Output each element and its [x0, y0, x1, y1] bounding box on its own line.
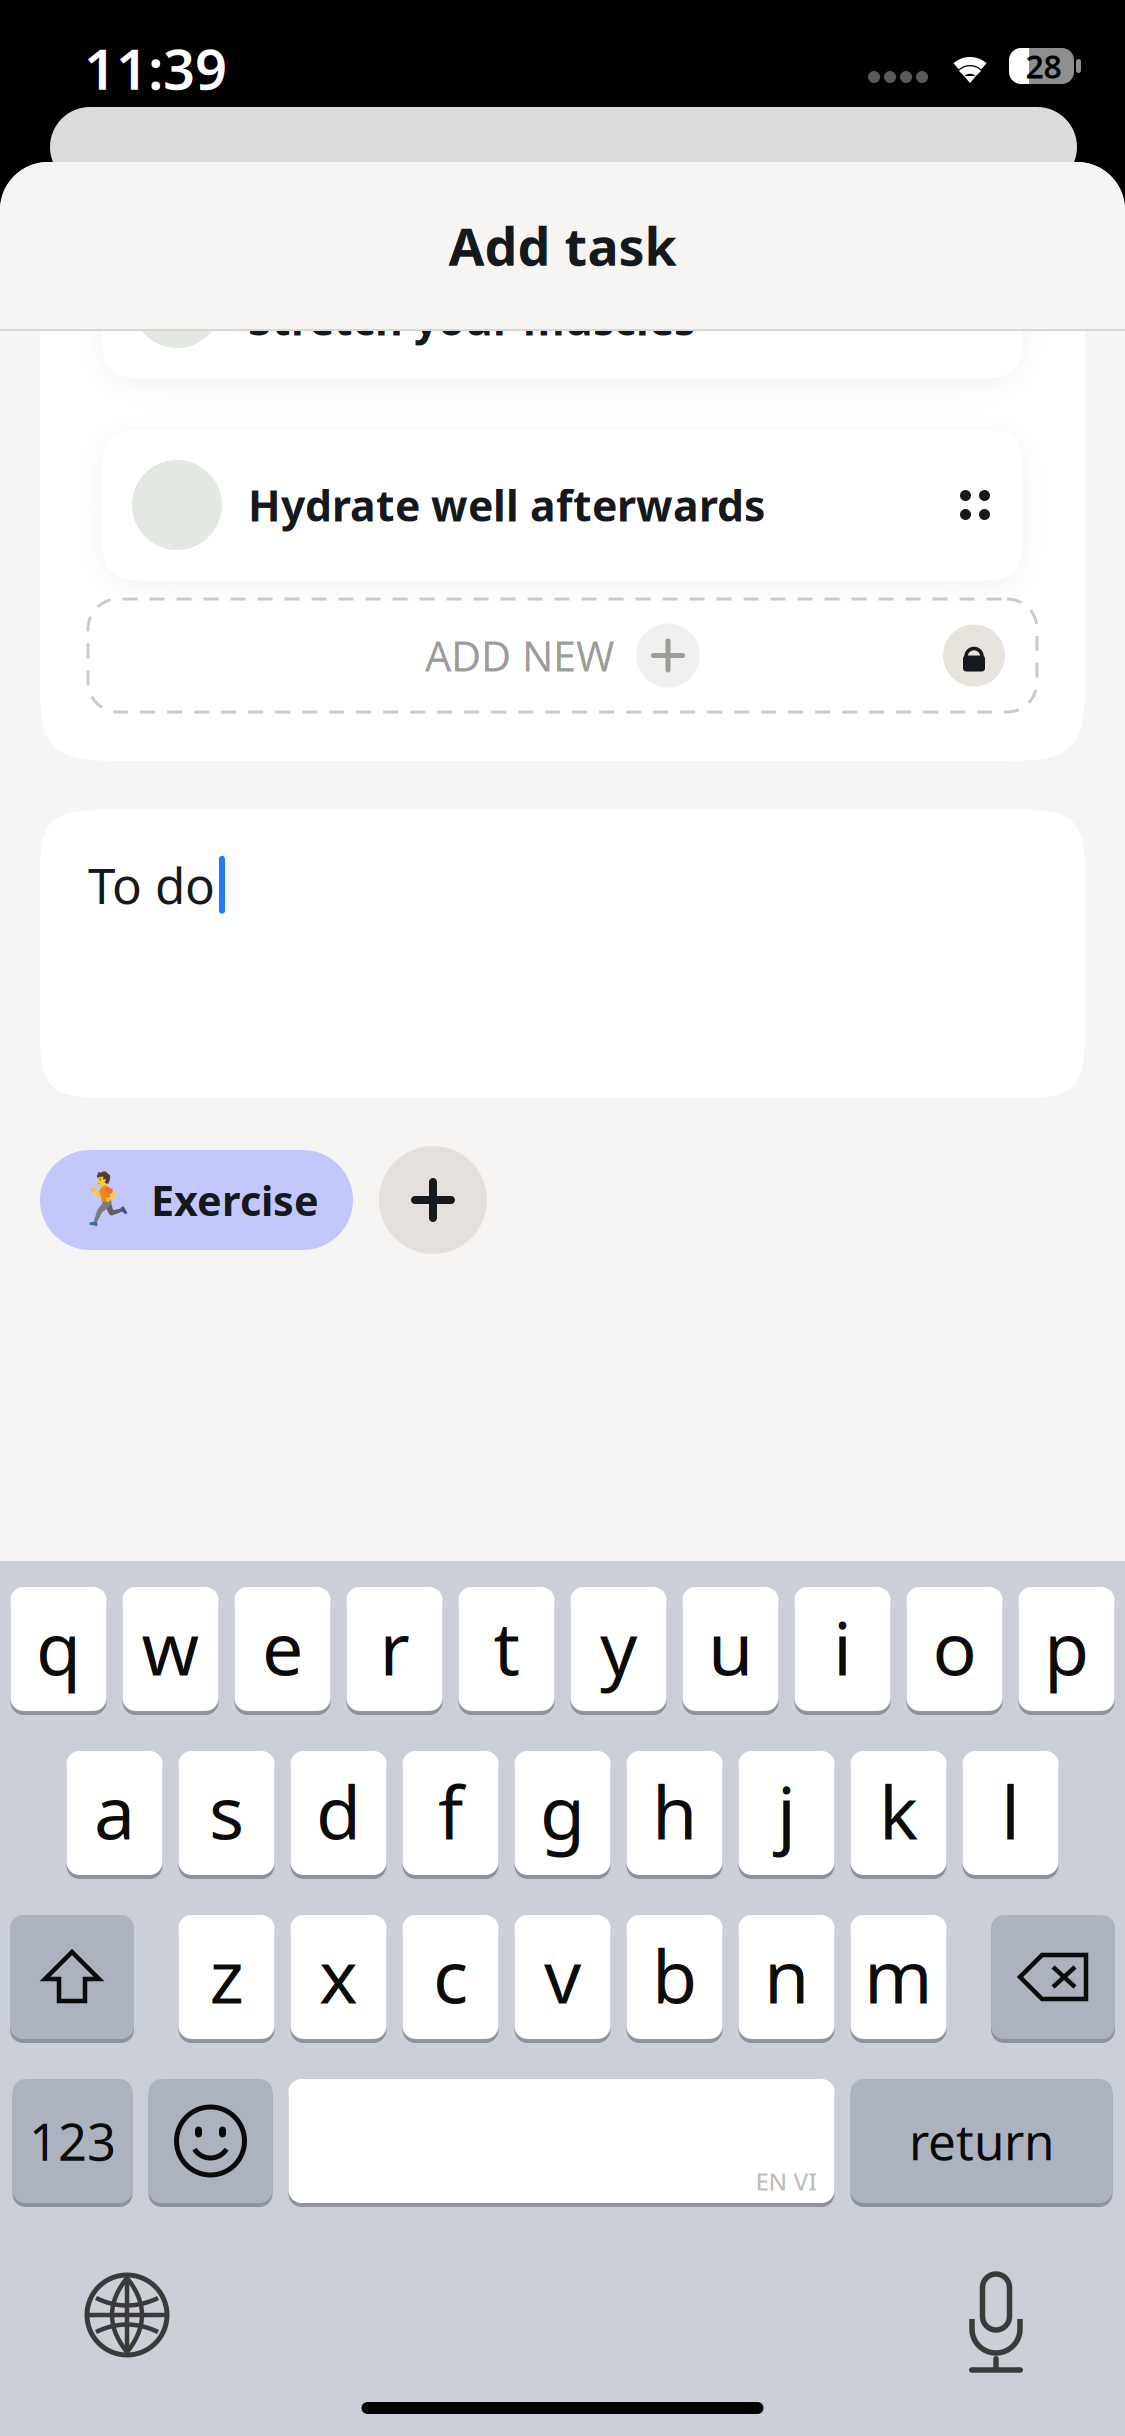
button[interactable]: ADD NEW: [88, 599, 1037, 712]
button[interactable]: r: [346, 1585, 442, 1713]
staticText: q: [36, 1598, 81, 1696]
staticText: d: [316, 1762, 361, 1860]
button[interactable]: 🏃: [40, 1150, 353, 1250]
staticText: h: [652, 1762, 697, 1860]
button[interactable]: i: [794, 1585, 890, 1713]
button[interactable]: b: [626, 1913, 722, 2041]
staticText: j: [777, 1762, 796, 1860]
button[interactable]: f: [402, 1749, 498, 1877]
staticText: f: [438, 1762, 463, 1860]
button[interactable]: u: [682, 1585, 778, 1713]
button[interactable]: p: [1018, 1585, 1114, 1713]
staticText: 123: [29, 2107, 116, 2175]
staticText: c: [433, 1926, 468, 2024]
staticText: ADD NEW: [425, 628, 614, 683]
button[interactable]: Return: [850, 2077, 1112, 2205]
button[interactable]: s: [178, 1749, 274, 1877]
button[interactable]: k: [850, 1749, 946, 1877]
staticText: z: [209, 1926, 243, 2024]
button[interactable]: z: [178, 1913, 274, 2041]
button[interactable]: Lock: [943, 624, 1005, 686]
staticText: 🏃: [74, 1171, 137, 1229]
staticText: Add task: [448, 211, 676, 280]
staticText: Stretch your muscles: [248, 291, 695, 347]
staticText: To do: [88, 852, 215, 917]
button[interactable]: n: [738, 1913, 834, 2041]
staticText: EN VI: [755, 2165, 816, 2197]
button[interactable]: Shift: [10, 1913, 134, 2041]
staticText: t: [493, 1598, 519, 1696]
button[interactable]: Add tag: [379, 1146, 487, 1254]
button[interactable]: a: [66, 1749, 162, 1877]
staticText: v: [544, 1926, 581, 2024]
button[interactable]: v: [514, 1913, 610, 2041]
staticText: p: [1044, 1598, 1089, 1696]
button[interactable]: t: [458, 1585, 554, 1713]
staticText: g: [540, 1762, 585, 1860]
button[interactable]: Delete: [991, 1913, 1115, 2041]
button[interactable]: x: [290, 1913, 386, 2041]
button[interactable]: h: [626, 1749, 722, 1877]
staticText: l: [1001, 1762, 1020, 1860]
button[interactable]: y: [570, 1585, 666, 1713]
staticText: k: [879, 1762, 918, 1860]
staticText: 28: [1025, 45, 1061, 87]
button[interactable]: Numbers: [12, 2077, 132, 2205]
button[interactable]: Space: [288, 2077, 834, 2205]
staticText: 11:39: [84, 31, 227, 105]
staticText: y: [600, 1598, 637, 1696]
staticText: a: [94, 1762, 135, 1860]
button[interactable]: Dictate: [967, 2255, 1025, 2375]
button[interactable]: Next keyboard: [87, 2275, 167, 2355]
button[interactable]: o: [906, 1585, 1002, 1713]
staticText: r: [379, 1598, 409, 1696]
staticText: o: [932, 1598, 976, 1696]
button[interactable]: Stretch your muscles: [102, 227, 1023, 379]
button[interactable]: l: [962, 1749, 1058, 1877]
staticText: return: [909, 2108, 1054, 2174]
button[interactable]: d: [290, 1749, 386, 1877]
button[interactable]: g: [514, 1749, 610, 1877]
staticText: Exercise: [151, 1173, 319, 1227]
staticText: e: [262, 1598, 303, 1696]
staticText: n: [764, 1926, 809, 2024]
staticText: s: [209, 1762, 244, 1860]
button[interactable]: j: [738, 1749, 834, 1877]
button[interactable]: w: [122, 1585, 218, 1713]
staticText: b: [652, 1926, 697, 2024]
button[interactable]: m: [850, 1913, 946, 2041]
button[interactable]: e: [234, 1585, 330, 1713]
staticText: Hydrate well afterwards: [248, 477, 765, 533]
button[interactable]: Hydrate well afterwards: [102, 429, 1023, 581]
staticText: u: [708, 1598, 753, 1696]
button[interactable]: q: [10, 1585, 106, 1713]
staticText: x: [319, 1926, 358, 2024]
staticText: w: [141, 1598, 199, 1696]
staticText: i: [833, 1598, 852, 1696]
staticText: m: [864, 1926, 933, 2024]
button[interactable]: Emoji: [148, 2077, 272, 2205]
button[interactable]: c: [402, 1913, 498, 2041]
